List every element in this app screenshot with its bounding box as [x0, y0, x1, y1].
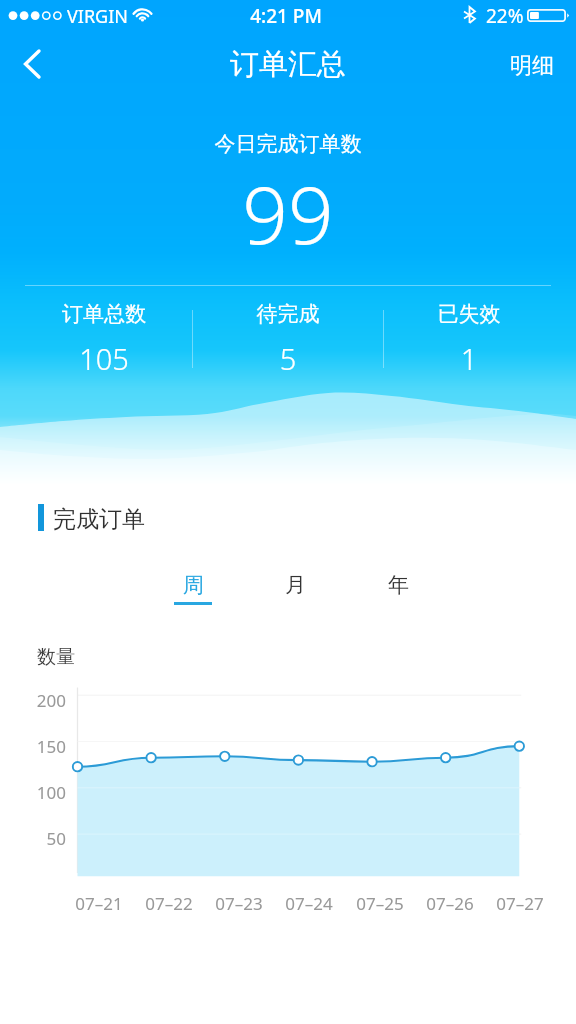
staticText: 07–27	[484, 892, 556, 915]
staticText: 订单总数	[24, 301, 184, 327]
button[interactable]: 07–21	[63, 892, 135, 916]
staticText: 100	[12, 781, 66, 804]
staticText: 150	[12, 735, 66, 758]
button[interactable]: Back	[6, 36, 58, 92]
staticText: 07–24	[273, 892, 345, 915]
button[interactable]: 已失效	[389, 301, 549, 383]
staticText: 07–26	[414, 892, 486, 915]
staticText: 99	[0, 158, 576, 267]
button[interactable]: 订单总数	[24, 301, 184, 383]
button[interactable]: 待完成	[208, 301, 368, 383]
button[interactable]: 周	[165, 566, 221, 612]
staticText: 明细	[510, 52, 554, 80]
button[interactable]: 年	[370, 566, 426, 612]
button[interactable]: 07–24	[273, 892, 345, 916]
staticText: 待完成	[208, 301, 368, 327]
staticText: 4:21 PM	[236, 3, 336, 29]
staticText: 50	[12, 827, 66, 850]
button[interactable]: 07–23	[203, 892, 275, 916]
staticText: 今日完成订单数	[0, 131, 576, 157]
staticText: 07–21	[63, 892, 135, 915]
staticText: 07–22	[133, 892, 205, 915]
staticText: 订单汇总	[230, 46, 346, 83]
button[interactable]: 07–22	[133, 892, 205, 916]
button[interactable]: 07–27	[484, 892, 556, 916]
button[interactable]: 明细	[488, 42, 576, 90]
staticText: 周	[183, 572, 204, 598]
staticText: 已失效	[389, 301, 549, 327]
staticText: VIRGIN	[67, 4, 128, 29]
staticText: 完成订单	[53, 505, 145, 534]
staticText: 年	[388, 572, 409, 598]
button[interactable]: 07–26	[414, 892, 486, 916]
staticText: 07–25	[344, 892, 416, 915]
button[interactable]: 07–25	[344, 892, 416, 916]
button[interactable]: 月	[267, 566, 323, 612]
staticText: 07–23	[203, 892, 275, 915]
staticText: 1	[389, 339, 549, 378]
staticText: 数量	[37, 645, 75, 669]
staticText: 5	[208, 339, 368, 378]
staticText: 105	[24, 339, 184, 378]
staticText: 22%	[486, 3, 524, 29]
staticText: 200	[12, 689, 66, 712]
staticText: 月	[285, 572, 306, 598]
